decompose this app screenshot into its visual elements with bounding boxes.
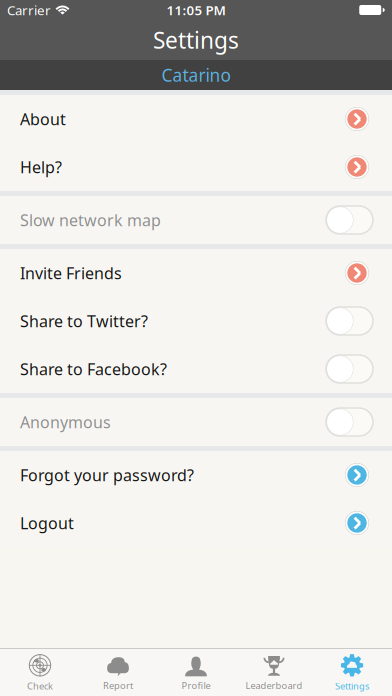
button[interactable]: Catarino: [0, 60, 392, 90]
button[interactable]: Help?: [0, 143, 392, 191]
staticText: Help?: [20, 156, 62, 178]
staticText: Check: [27, 680, 53, 692]
staticText: Anonymous: [20, 411, 111, 433]
button[interactable]: Slow network map: [0, 196, 392, 244]
staticText: Leaderboard: [245, 679, 302, 692]
button[interactable]: About: [0, 95, 392, 143]
staticText: Settings: [153, 25, 239, 55]
staticText: Share to Twitter?: [20, 310, 148, 332]
button[interactable]: Check: [1, 649, 79, 696]
staticText: About: [20, 108, 66, 130]
staticText: Carrier: [7, 1, 51, 19]
staticText: Slow network map: [20, 209, 161, 231]
staticText: Forgot your password?: [20, 464, 194, 486]
button[interactable]: Forgot your password?: [0, 451, 392, 499]
button[interactable]: Anonymous: [0, 398, 392, 446]
button[interactable]: Share to Twitter?: [0, 297, 392, 345]
staticText: Share to Facebook?: [20, 358, 167, 380]
button[interactable]: Profile: [157, 649, 235, 696]
staticText: Invite Friends: [20, 262, 122, 284]
staticText: Logout: [20, 512, 74, 534]
button[interactable]: Share to Facebook?: [0, 345, 392, 393]
staticText: 11:05 PM: [166, 1, 225, 19]
staticText: Profile: [181, 679, 210, 692]
button[interactable]: Logout: [0, 499, 392, 547]
staticText: Settings: [335, 680, 369, 692]
button[interactable]: Settings: [313, 649, 391, 696]
button[interactable]: Report: [79, 649, 157, 696]
button[interactable]: Leaderboard: [235, 649, 313, 696]
staticText: Report: [103, 679, 133, 692]
staticText: Catarino: [161, 63, 230, 86]
button[interactable]: Invite Friends: [0, 249, 392, 297]
